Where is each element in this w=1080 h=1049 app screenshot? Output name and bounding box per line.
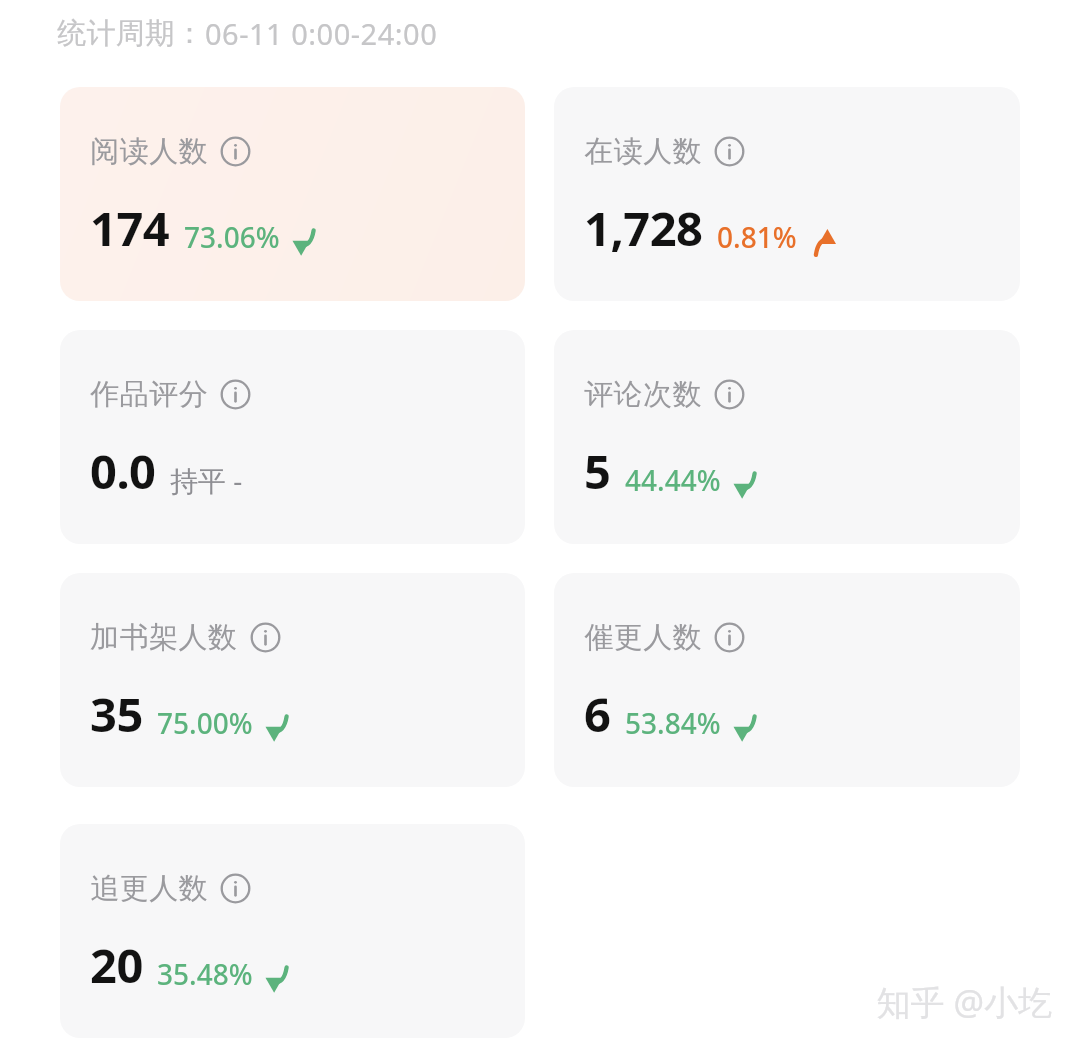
button[interactable]: 评论次数 [554,330,1020,544]
staticText: 追更人数 [90,870,208,907]
staticText: 35 [90,682,143,746]
button[interactable]: More information [250,622,281,653]
button[interactable]: 作品评分 [60,330,525,544]
staticText: 6 [584,682,611,746]
staticText: 持平 - [170,461,243,499]
staticText: 在读人数 [584,133,702,170]
staticText: 0.81% [717,218,797,256]
button[interactable]: More information [714,379,745,410]
button[interactable]: More information [220,379,251,410]
staticText: 174 [90,196,170,260]
staticText: 评论次数 [584,376,702,413]
button[interactable]: 阅读人数 [60,87,525,301]
staticText: 阅读人数 [90,133,208,170]
staticText: 20 [90,933,143,997]
staticText: 催更人数 [584,619,702,656]
staticText: 作品评分 [90,376,208,413]
button[interactable]: More information [714,622,745,653]
button[interactable]: 催更人数 [554,573,1020,787]
staticText: 53.84% [625,704,721,742]
button[interactable]: 在读人数 [554,87,1020,301]
staticText: 5 [584,439,611,503]
button[interactable]: 加书架人数 [60,573,525,787]
staticText: 44.44% [625,461,721,499]
staticText: 73.06% [184,218,280,256]
button[interactable]: More information [714,136,745,167]
staticText: 统计周期： [57,15,205,52]
button[interactable]: 追更人数 [60,824,525,1038]
button[interactable]: More information [220,136,251,167]
staticText: 知乎 @小圪 [876,979,1052,1025]
button[interactable]: More information [220,873,251,904]
staticText: 75.00% [157,704,253,742]
staticText: 加书架人数 [90,619,238,656]
staticText: 35.48% [157,955,253,993]
staticText: 06-11 0:00-24:00 [205,14,438,53]
staticText: 1,728 [584,196,703,260]
staticText: 0.0 [90,439,156,503]
